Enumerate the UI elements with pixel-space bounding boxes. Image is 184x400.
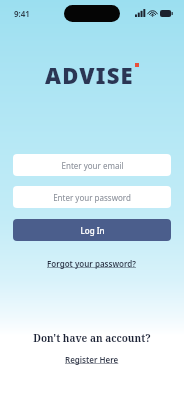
staticText: 9:41 <box>14 8 30 19</box>
staticText: Don't have an account? <box>33 331 151 345</box>
button[interactable]: Log In <box>13 219 171 241</box>
button[interactable]: Register Here <box>59 352 125 367</box>
staticText: ADVISE <box>45 60 134 90</box>
button[interactable]: Forgot your password? <box>41 256 143 271</box>
button[interactable]: Enter your email <box>13 154 171 176</box>
staticText: Enter your email <box>61 160 124 171</box>
staticText: Log In <box>80 225 105 236</box>
staticText: Enter your password <box>53 192 131 203</box>
button[interactable]: Enter your password <box>13 186 171 208</box>
